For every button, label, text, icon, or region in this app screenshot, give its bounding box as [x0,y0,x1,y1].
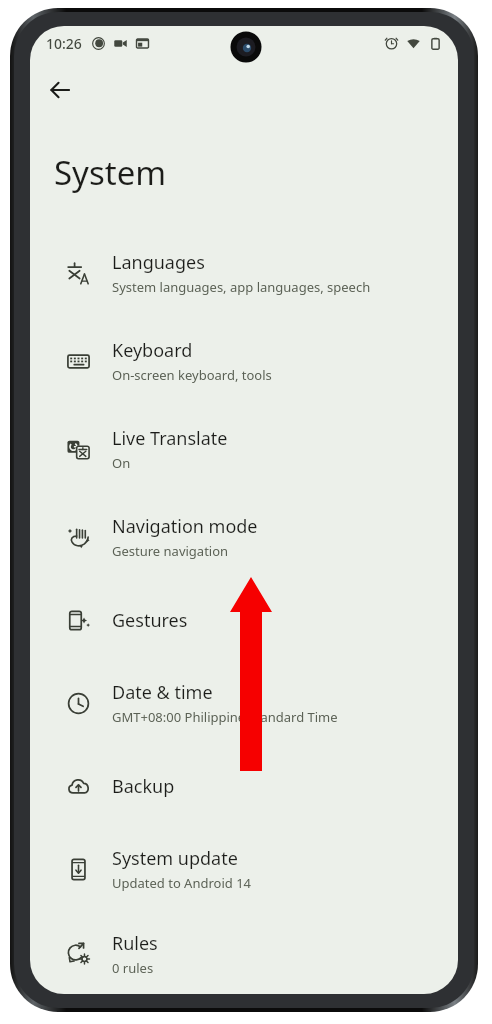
staticText: 0 rules [112,959,154,977]
staticText: Rules [112,931,158,956]
staticText: Backup [112,774,175,799]
staticText: Live Translate [112,426,228,451]
staticText: Gesture navigation [112,542,229,560]
staticText: System [54,150,167,195]
staticText: Languages [112,250,205,275]
button[interactable]: Languages [30,229,458,317]
button[interactable]: Navigation mode [30,493,458,581]
button[interactable]: Backup [30,747,458,825]
staticText: Navigation mode [112,514,258,539]
staticText: Keyboard [112,338,193,363]
button[interactable]: Date & time [30,659,458,747]
staticText: Updated to Android 14 [112,874,252,892]
staticText: Gestures [112,608,188,633]
staticText: On [112,454,131,472]
button[interactable]: Gestures [30,581,458,659]
staticText: 10:26 [46,34,82,53]
staticText: GMT+08:00 Philippine Standard Time [112,708,338,726]
button[interactable]: Live Translate [30,405,458,493]
button[interactable]: Back [36,66,84,114]
staticText: System languages, app languages, speech [112,278,371,296]
staticText: On-screen keyboard, tools [112,366,272,384]
button[interactable]: Keyboard [30,317,458,405]
button[interactable]: System update [30,825,458,913]
button[interactable]: Rules [30,913,458,994]
staticText: System update [112,846,238,871]
staticText: Date & time [112,680,213,705]
